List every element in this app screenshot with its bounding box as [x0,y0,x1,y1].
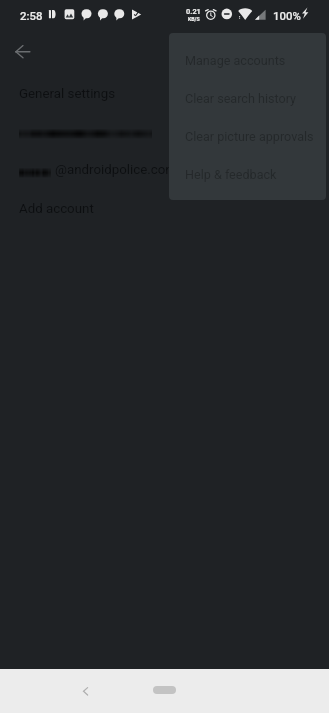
staticText: Clear search history [185,91,297,106]
button[interactable]: Clear search history [169,79,326,117]
staticText: Add account [19,201,94,217]
button[interactable]: Home [153,686,176,694]
staticText: 0.21 [186,7,201,16]
staticText: General settings [19,86,116,102]
button[interactable]: Add account [0,198,329,220]
button[interactable] [0,122,329,144]
button[interactable]: Navigate up [3,38,30,65]
staticText: @androidpolice.com [55,162,177,178]
staticText: Help & feedback [185,167,277,182]
staticText: 2:58 [20,9,43,22]
button[interactable]: General settings [0,82,329,106]
button[interactable]: Clear picture approvals [169,117,326,155]
staticText: Manage accounts [185,53,286,68]
staticText: 100% [273,9,301,22]
staticText: KB/S [188,16,200,22]
button[interactable]: @androidpolice.com [0,160,329,182]
button[interactable]: Back [72,677,100,705]
staticText: Clear picture approvals [185,129,314,144]
